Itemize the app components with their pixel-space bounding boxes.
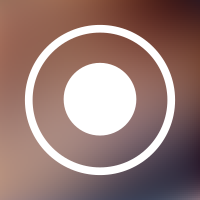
- button[interactable]: Record: [25, 25, 175, 175]
